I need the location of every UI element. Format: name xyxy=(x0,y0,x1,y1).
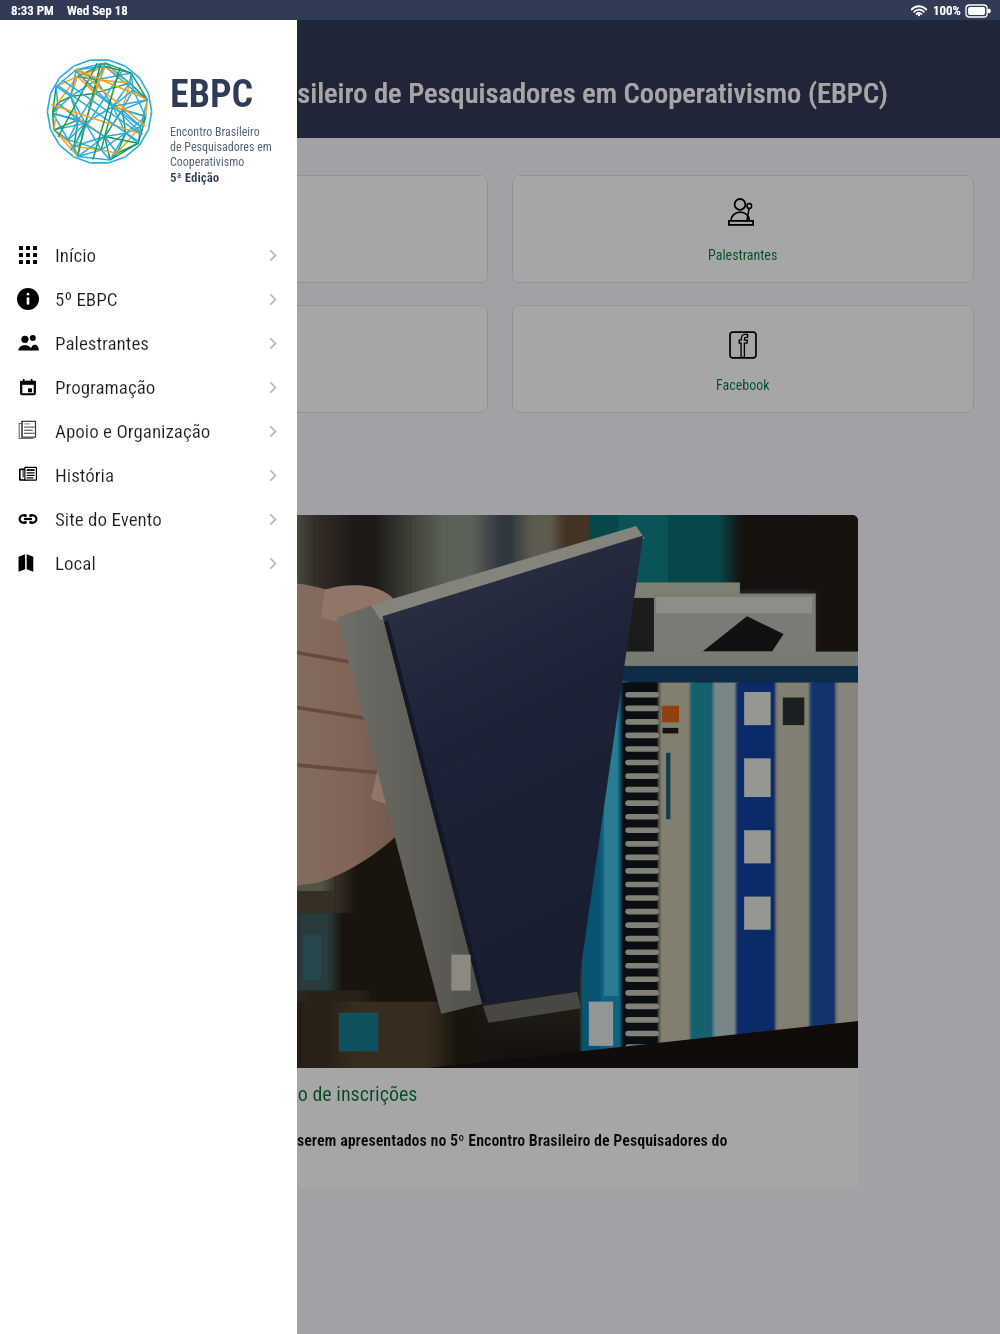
staticText: Programação xyxy=(221,377,295,393)
staticText: 5º EBPC xyxy=(234,247,281,263)
staticText: 5ª Edição xyxy=(170,170,220,185)
button[interactable]: Palestrantes xyxy=(0,321,297,365)
staticText: Prazo para envio de trabalhos a serem ap… xyxy=(142,1131,728,1150)
button[interactable]: Facebook xyxy=(512,305,974,413)
staticText: Início xyxy=(55,244,97,266)
staticText: Site do Evento xyxy=(55,508,162,530)
staticText: 100% xyxy=(933,3,961,18)
staticText: História xyxy=(55,464,115,486)
staticText: 8:33 PM xyxy=(11,3,54,18)
button[interactable]: Programação xyxy=(0,365,297,409)
staticText: 5º EBPC xyxy=(55,288,118,310)
staticText: Local xyxy=(55,552,96,574)
button[interactable]: Palestrantes xyxy=(512,175,974,283)
staticText: Programação xyxy=(55,376,156,398)
button[interactable]: Apoio e Organização xyxy=(0,409,297,453)
button[interactable]: História xyxy=(0,453,297,497)
staticText: EBPC xyxy=(170,72,254,117)
staticText: Wed Sep 18 xyxy=(67,3,128,18)
staticText: Encontro Brasileiro de Pesquisadores em … xyxy=(170,125,272,169)
staticText: Palestrantes xyxy=(55,332,149,354)
button[interactable]: Início xyxy=(0,233,297,277)
staticText: Apoio e Organização xyxy=(55,420,211,442)
button[interactable]: 5º EBPC xyxy=(0,277,297,321)
button[interactable]: 5º EBPC xyxy=(27,175,488,283)
staticText: Palestrantes xyxy=(708,247,778,263)
staticText: Encontro Brasileiro de Pesquisadores em … xyxy=(152,77,888,110)
button[interactable]: Programação xyxy=(27,305,488,413)
staticText: Facebook xyxy=(716,377,770,393)
button[interactable]: Prorrogado prazo de inscrições xyxy=(142,515,858,1188)
staticText: Prorrogado prazo de inscrições xyxy=(171,1082,418,1105)
button[interactable]: Site do Evento xyxy=(0,497,297,541)
button[interactable]: Local xyxy=(0,541,297,585)
